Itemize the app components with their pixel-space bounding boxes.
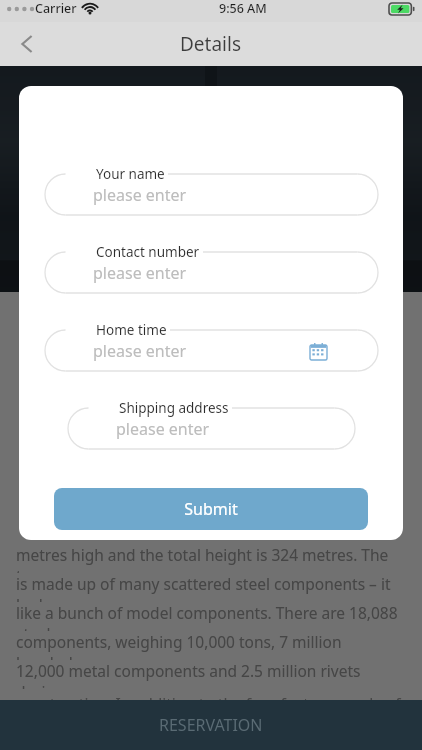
staticText: Shipping address xyxy=(119,399,229,417)
staticText: please enter xyxy=(93,184,187,206)
staticText: 12,000 metal components and 2.5 million … xyxy=(16,660,406,689)
button[interactable]: Submit xyxy=(54,488,368,530)
staticText: is made up of many scattered steel compo… xyxy=(16,573,406,602)
staticText: reinforced concrete, the whole body is m… xyxy=(16,718,406,747)
button[interactable] xyxy=(45,165,378,215)
staticText: please enter xyxy=(93,340,187,362)
staticText: Details xyxy=(180,31,242,57)
staticText: Contact number xyxy=(96,243,200,261)
staticText: like a bunch of model components. There … xyxy=(16,602,406,631)
staticText: Your name xyxy=(96,165,165,183)
button[interactable]: Back xyxy=(6,22,50,66)
staticText: metres high and the total height is 324 … xyxy=(16,544,406,573)
staticText: Submit xyxy=(184,498,238,520)
staticText: Home time xyxy=(96,321,167,339)
staticText: components, weighing 10,000 tons, 7 mill… xyxy=(16,631,406,660)
staticText: construction. In addition to the four fe… xyxy=(16,693,401,714)
button[interactable]: RESERVATION xyxy=(0,700,422,750)
button[interactable]: Pick date xyxy=(306,339,330,363)
staticText: Carrier xyxy=(35,0,77,17)
staticText: 9:56 AM xyxy=(219,0,267,17)
staticText: please enter xyxy=(116,418,210,440)
staticText: please enter xyxy=(93,262,187,284)
button[interactable] xyxy=(45,243,378,293)
button[interactable] xyxy=(45,321,378,371)
staticText: RESERVATION xyxy=(159,714,263,736)
button[interactable] xyxy=(68,399,355,449)
